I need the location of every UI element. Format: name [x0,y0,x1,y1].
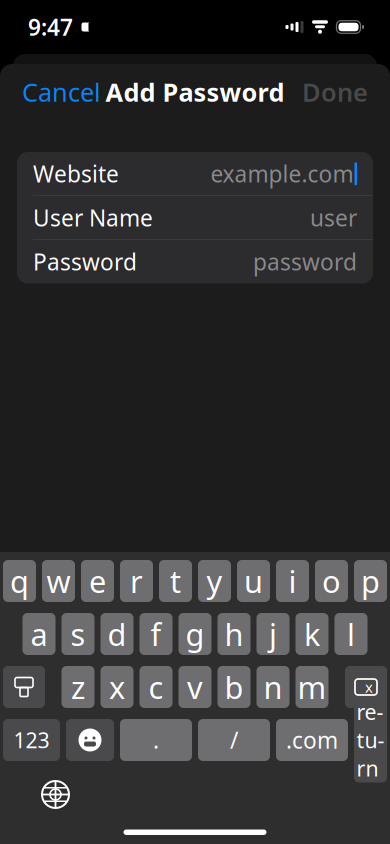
button[interactable]: q [3,560,36,602]
staticText: n [263,667,282,707]
button[interactable]: . [120,719,192,761]
staticText: Password [33,247,137,277]
staticText: h [224,614,243,654]
staticText: f [150,614,161,654]
staticText: y [206,561,222,601]
staticText: e [89,561,106,601]
staticText: u [244,561,263,601]
staticText: password [253,247,357,277]
staticText: d [107,614,126,654]
button[interactable]: Emoji [66,719,114,761]
staticText: 123 [13,726,49,754]
staticText: g [185,614,204,654]
staticText: . [153,725,159,755]
staticText: l [347,614,355,654]
button[interactable]: Website [17,152,373,195]
button[interactable]: Cancel [10,65,113,119]
staticText: p [361,561,380,601]
staticText: c [148,667,163,707]
button[interactable]: c [139,666,172,708]
button[interactable]: Next keyboard [30,769,81,820]
button[interactable]: z [61,666,94,708]
staticText: s [70,614,85,654]
staticText: v [187,667,203,707]
button[interactable]: u [237,560,270,602]
button[interactable]: m [295,666,328,708]
button[interactable]: s [61,613,94,655]
staticText: o [322,561,341,601]
staticText: a [30,614,47,654]
staticText: x [109,667,125,707]
staticText: z [71,667,85,707]
button[interactable]: t [159,560,192,602]
button[interactable]: f [139,613,172,655]
staticText: Cancel [22,75,101,109]
button[interactable]: User Name [17,196,373,239]
staticText: 9:47 [28,12,73,42]
button[interactable]: / [198,719,270,761]
button[interactable]: .com [276,719,348,761]
button[interactable]: e [81,560,114,602]
button[interactable]: Delete [345,666,387,708]
staticText: return [356,697,384,782]
button[interactable]: x [100,666,133,708]
staticText: .com [286,725,338,755]
button[interactable]: Shift [3,666,45,708]
button[interactable]: y [198,560,231,602]
button[interactable]: a [22,613,55,655]
button[interactable]: i [276,560,309,602]
button[interactable]: g [178,613,211,655]
button[interactable]: w [42,560,75,602]
staticText: r [130,561,143,601]
button[interactable]: k [295,613,328,655]
staticText: j [269,614,277,654]
staticText: User Name [33,203,153,233]
staticText: x [365,677,373,697]
button[interactable]: j [256,613,289,655]
button[interactable]: p [354,560,387,602]
staticText: user [310,203,357,233]
button[interactable]: 123 [3,719,60,761]
staticText: m [297,667,326,707]
staticText: k [304,614,320,654]
staticText: Done [302,75,368,109]
button[interactable]: o [315,560,348,602]
staticText: w [46,561,70,601]
button[interactable]: Password [17,240,373,283]
button[interactable]: v [178,666,211,708]
staticText: example.com [210,159,353,189]
staticText: t [170,561,181,601]
staticText: Add Password [105,75,284,109]
staticText: i [288,561,296,601]
staticText: b [224,667,243,707]
button[interactable]: l [334,613,367,655]
button[interactable]: d [100,613,133,655]
staticText: q [10,561,29,601]
staticText: / [230,725,238,755]
button[interactable]: r [120,560,153,602]
button[interactable]: return [354,719,387,761]
button[interactable]: n [256,666,289,708]
button[interactable]: b [217,666,250,708]
button[interactable]: h [217,613,250,655]
staticText: Website [33,159,119,189]
button[interactable]: Done [290,65,380,119]
